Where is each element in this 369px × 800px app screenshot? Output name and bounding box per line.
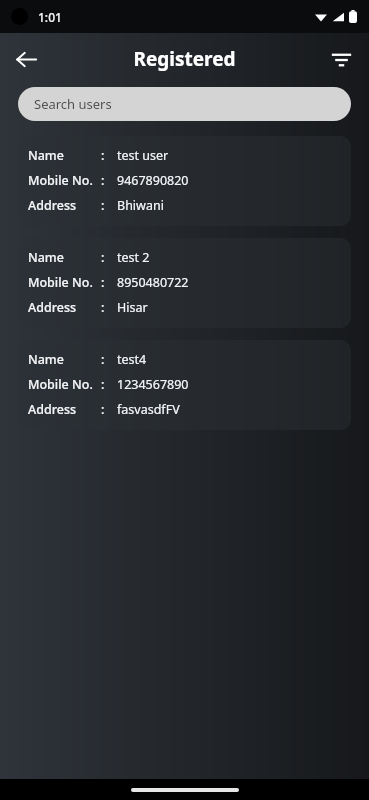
button[interactable]: Back — [6, 39, 46, 79]
staticText: Mobile No. — [28, 172, 93, 189]
staticText: : — [101, 351, 105, 368]
staticText: Search users — [34, 95, 112, 113]
staticText: Registered — [133, 46, 236, 72]
staticText: Name — [28, 351, 64, 368]
button[interactable]: Name — [18, 136, 351, 226]
staticText: test 2 — [117, 249, 150, 266]
staticText: : — [101, 274, 105, 291]
staticText: test user — [117, 147, 169, 164]
staticText: : — [101, 147, 105, 164]
staticText: 1234567890 — [117, 376, 189, 393]
staticText: : — [101, 299, 105, 316]
staticText: Name — [28, 249, 64, 266]
staticText: fasvasdfFV — [117, 401, 180, 418]
button[interactable]: Filter — [321, 39, 361, 79]
staticText: Bhiwani — [117, 197, 164, 214]
staticText: : — [101, 172, 105, 189]
staticText: 1:01 — [38, 9, 62, 25]
staticText: : — [101, 197, 105, 214]
staticText: 8950480722 — [117, 274, 189, 291]
button[interactable]: Name — [18, 340, 351, 430]
staticText: Name — [28, 147, 64, 164]
staticText: : — [101, 376, 105, 393]
staticText: Address — [28, 197, 77, 214]
staticText: Address — [28, 299, 77, 316]
staticText: Address — [28, 401, 77, 418]
staticText: 9467890820 — [117, 172, 189, 189]
button[interactable]: Search users — [18, 87, 351, 121]
button[interactable]: Name — [18, 238, 351, 328]
staticText: Hisar — [117, 299, 148, 316]
staticText: Mobile No. — [28, 274, 93, 291]
staticText: : — [101, 401, 105, 418]
staticText: : — [101, 249, 105, 266]
staticText: Mobile No. — [28, 376, 93, 393]
staticText: test4 — [117, 351, 147, 368]
